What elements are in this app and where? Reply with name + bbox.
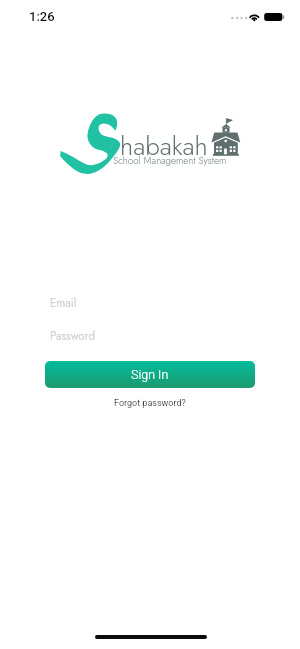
button[interactable]: Email: [0, 291, 300, 315]
staticText: habakah: [120, 127, 208, 165]
staticText: School Management System: [113, 154, 227, 168]
button[interactable]: Forgot password?: [108, 396, 192, 411]
staticText: Email: [50, 295, 77, 312]
staticText: Password: [50, 328, 96, 345]
staticText: Sign In: [131, 367, 169, 382]
button[interactable]: Password: [0, 324, 300, 348]
staticText: Forgot password?: [114, 398, 186, 409]
staticText: 1:26: [29, 9, 55, 24]
button[interactable]: Sign In: [45, 361, 255, 388]
